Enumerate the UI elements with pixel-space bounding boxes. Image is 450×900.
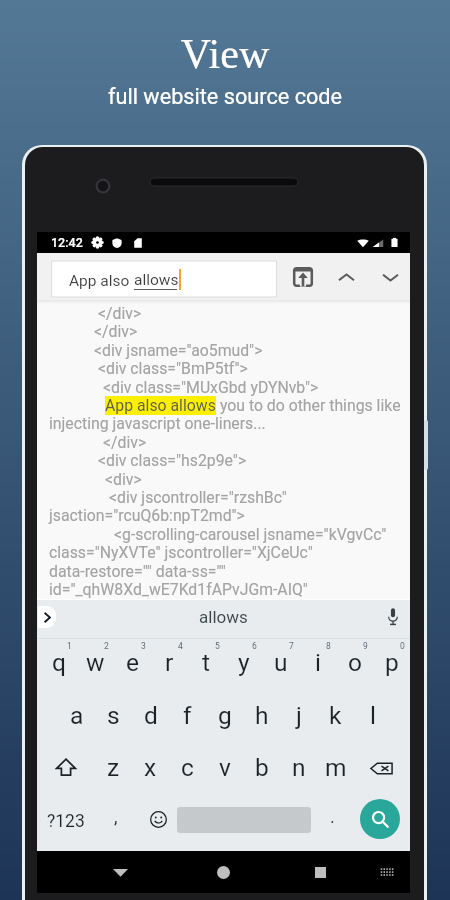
staticText: z <box>107 753 120 782</box>
staticText: c <box>181 753 194 782</box>
button[interactable]: , <box>95 795 137 847</box>
staticText: ?123 <box>47 811 85 832</box>
staticText: 3 <box>141 641 146 651</box>
staticText: <g-scrolling-carousel jsname="kVgvCc" <box>114 525 387 544</box>
button[interactable]: p <box>373 639 410 691</box>
staticText: r <box>165 648 174 677</box>
button[interactable]: i <box>299 639 336 691</box>
staticText: class="NyXVTe" jscontroller="XjCeUc" <box>49 543 313 562</box>
button[interactable]: Emoji <box>137 795 179 847</box>
staticText: allows <box>134 271 179 289</box>
button[interactable]: Shift <box>37 743 95 795</box>
button[interactable]: Back <box>100 852 140 892</box>
button[interactable]: v <box>206 743 243 795</box>
staticText: 6 <box>252 641 257 651</box>
staticText: h <box>255 701 269 730</box>
staticText: 0 <box>400 641 405 651</box>
button[interactable]: App also <box>52 261 277 297</box>
staticText: id="_qhW8Xd_wE7Kd1fAPvJGm-AIQ" <box>49 580 308 599</box>
button[interactable]: q <box>40 639 77 691</box>
staticText: you to do other things like <box>216 396 401 415</box>
button[interactable]: a <box>58 691 95 743</box>
button[interactable]: Home <box>203 852 243 892</box>
staticText: s <box>107 701 120 730</box>
staticText: b <box>255 753 269 782</box>
staticText: a <box>70 701 84 730</box>
staticText: </div> <box>98 304 142 323</box>
button[interactable]: l <box>354 691 391 743</box>
button[interactable]: b <box>243 743 280 795</box>
button[interactable]: Previous match <box>324 255 368 299</box>
staticText: 7 <box>289 641 294 651</box>
staticText: i <box>315 648 321 677</box>
button[interactable]: Open in browser <box>281 255 325 299</box>
staticText: </div> <box>103 433 147 452</box>
staticText: g <box>218 701 232 730</box>
staticText: o <box>348 648 362 677</box>
button[interactable]: Voice input <box>381 604 405 628</box>
button[interactable]: s <box>95 691 132 743</box>
staticText: <div> <box>105 470 142 489</box>
staticText: j <box>296 701 302 730</box>
button[interactable]: allows <box>37 605 410 628</box>
button[interactable]: j <box>280 691 317 743</box>
staticText: 9 <box>363 641 368 651</box>
staticText: , <box>114 806 118 827</box>
button[interactable]: More suggestions <box>38 606 56 628</box>
staticText: p <box>385 648 399 677</box>
staticText: f <box>183 701 192 730</box>
button[interactable]: Next match <box>368 255 412 299</box>
button[interactable]: o <box>336 639 373 691</box>
button[interactable]: h <box>243 691 280 743</box>
button[interactable]: c <box>169 743 206 795</box>
button[interactable]: r <box>151 639 188 691</box>
button[interactable]: Backspace <box>352 743 410 795</box>
button[interactable]: f <box>169 691 206 743</box>
staticText: y <box>238 648 250 677</box>
staticText: App also allows <box>105 396 216 415</box>
staticText: . <box>330 806 335 827</box>
button[interactable]: . <box>311 795 353 847</box>
staticText: e <box>126 648 139 677</box>
staticText: </div> <box>94 322 138 341</box>
staticText: data-restore="" data-ss="" <box>49 562 226 581</box>
staticText: q <box>52 648 66 677</box>
button[interactable]: t <box>188 639 225 691</box>
button[interactable]: n <box>280 743 317 795</box>
button[interactable]: e <box>114 639 151 691</box>
button[interactable]: z <box>95 743 132 795</box>
staticText: 12:42 <box>51 235 83 250</box>
staticText: u <box>274 648 288 677</box>
staticText: l <box>370 701 376 730</box>
button[interactable]: y <box>225 639 262 691</box>
button[interactable]: k <box>317 691 354 743</box>
staticText: allows <box>199 607 248 627</box>
button[interactable]: Recent apps <box>300 852 340 892</box>
button[interactable]: Switch keyboard <box>367 852 407 892</box>
button[interactable]: d <box>132 691 169 743</box>
staticText: 1 <box>67 641 72 651</box>
button[interactable]: </div> <box>37 300 410 599</box>
staticText: jsaction="rcuQ6b:npT2md"> <box>49 506 245 525</box>
staticText: k <box>329 701 342 730</box>
button[interactable]: Search <box>360 799 400 839</box>
staticText: 8 <box>326 641 331 651</box>
staticText: <div jsname="ao5mud"> <box>94 341 263 360</box>
button[interactable]: x <box>132 743 169 795</box>
staticText: App also <box>69 272 134 290</box>
staticText: 4 <box>178 641 183 651</box>
staticText: 5 <box>215 641 220 651</box>
staticText: v <box>219 753 231 782</box>
staticText: x <box>144 753 157 782</box>
staticText: w <box>86 648 105 677</box>
button[interactable]: u <box>262 639 299 691</box>
staticText: full website source code <box>0 84 450 109</box>
staticText: View <box>0 31 450 78</box>
staticText: d <box>144 701 158 730</box>
button[interactable]: w <box>77 639 114 691</box>
button[interactable]: m <box>317 743 354 795</box>
button[interactable]: ?123 <box>37 795 95 847</box>
staticText: <div jscontroller="rzshBc" <box>109 488 287 507</box>
button[interactable]: g <box>206 691 243 743</box>
